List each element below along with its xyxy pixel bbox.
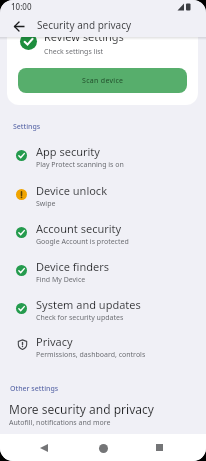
staticText: Scan device bbox=[82, 76, 124, 86]
staticText: Check for security updates bbox=[36, 313, 124, 323]
staticText: Settings bbox=[13, 122, 41, 132]
button[interactable] bbox=[0, 214, 206, 251]
staticText: Account security bbox=[36, 221, 122, 236]
staticText: More security and privacy bbox=[9, 401, 154, 417]
staticText: Privacy bbox=[36, 334, 73, 349]
staticText: Play Protect scanning is on bbox=[36, 160, 124, 170]
button[interactable] bbox=[0, 14, 36, 37]
button[interactable] bbox=[0, 290, 206, 327]
staticText: Swipe bbox=[36, 199, 56, 209]
staticText: Review settings bbox=[44, 29, 124, 44]
button[interactable]: Scan device bbox=[18, 68, 187, 93]
staticText: Security and privacy bbox=[37, 18, 132, 32]
button[interactable] bbox=[99, 444, 108, 453]
staticText: 10:00 bbox=[11, 1, 32, 12]
button[interactable] bbox=[0, 252, 206, 289]
staticText: Autofill, notifications and more bbox=[9, 418, 111, 428]
staticText: Other settings bbox=[10, 384, 59, 394]
staticText: Device finders bbox=[36, 259, 109, 274]
staticText: Find My Device bbox=[36, 275, 86, 285]
staticText: Google Account is protected bbox=[36, 237, 129, 247]
staticText: Permissions, dashboard, controls bbox=[36, 350, 146, 360]
button[interactable] bbox=[0, 137, 206, 174]
button[interactable] bbox=[0, 396, 206, 432]
staticText: App security bbox=[36, 144, 100, 159]
staticText: Check settings list bbox=[44, 47, 104, 57]
button[interactable] bbox=[40, 444, 48, 452]
button[interactable] bbox=[0, 176, 206, 213]
staticText: System and updates bbox=[36, 297, 141, 312]
button[interactable] bbox=[0, 327, 206, 364]
staticText: Device unlock bbox=[36, 183, 108, 198]
